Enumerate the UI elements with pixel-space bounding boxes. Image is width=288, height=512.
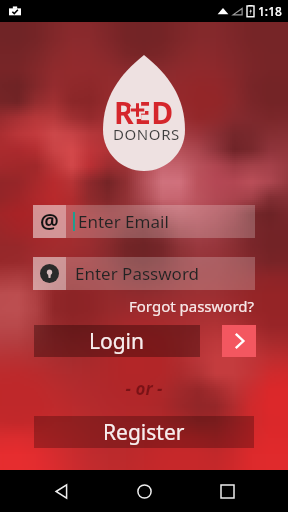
button[interactable]: Back — [39, 470, 83, 512]
button[interactable]: Register — [34, 416, 254, 448]
staticText: Register — [103, 418, 185, 447]
button[interactable]: Recents — [205, 470, 249, 512]
staticText: Login — [89, 327, 145, 356]
staticText: RED — [114, 92, 174, 133]
staticText: - or - — [0, 377, 288, 400]
staticText: 1:18 — [258, 3, 282, 19]
button[interactable]: Login — [34, 325, 200, 357]
button[interactable]: Home — [122, 470, 166, 512]
button[interactable]: Submit — [222, 325, 256, 357]
staticText: Forgot password? — [129, 296, 255, 316]
button[interactable]: Enter Password — [33, 257, 255, 290]
staticText: DONORS — [113, 124, 180, 144]
staticText: @ — [40, 207, 59, 236]
staticText: Enter Email — [78, 210, 169, 233]
button[interactable]: @ — [33, 205, 255, 238]
staticText: Enter Password — [75, 262, 200, 285]
button[interactable]: Forgot password? — [120, 296, 255, 316]
